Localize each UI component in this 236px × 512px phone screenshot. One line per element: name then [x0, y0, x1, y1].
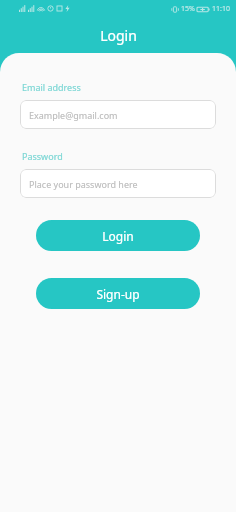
button[interactable]: Sign-up	[36, 278, 200, 309]
staticText: Example@gmail.com	[29, 109, 118, 121]
staticText: Password	[22, 150, 63, 162]
button[interactable]: Email address input	[20, 100, 216, 129]
staticText: Place your password here	[29, 178, 138, 190]
staticText: Login	[102, 228, 134, 244]
staticText: 15%	[181, 4, 195, 14]
staticText: Login	[100, 26, 137, 45]
staticText: Sign-up	[96, 286, 140, 302]
button[interactable]: Login	[36, 220, 200, 251]
button[interactable]: Password input	[20, 169, 216, 198]
staticText: 11:10	[212, 4, 230, 14]
staticText: Email address	[22, 81, 81, 93]
